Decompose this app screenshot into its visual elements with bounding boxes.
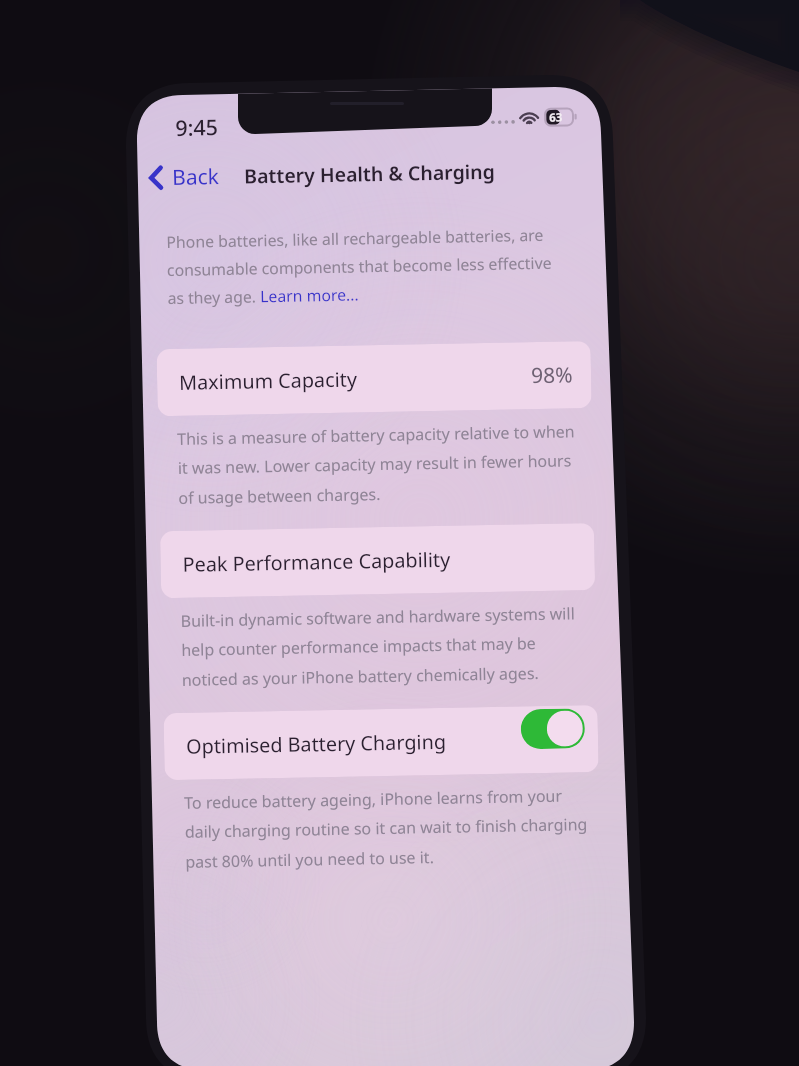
staticText: Back [172, 162, 219, 192]
button[interactable]: Optimised Battery Charging toggle [520, 708, 585, 749]
staticText: This is a measure of battery capacity re… [177, 420, 587, 509]
staticText: To reduce battery ageing, iPhone learns … [184, 784, 594, 873]
staticText: 63 [549, 109, 563, 126]
staticText: Battery Health & Charging [244, 158, 495, 190]
staticText: Peak Performance Capability [182, 546, 451, 578]
staticText: 9:45 [175, 112, 218, 142]
button[interactable]: Back [144, 156, 228, 198]
staticText: Maximum Capacity [179, 365, 357, 396]
staticText: Optimised Battery Charging [186, 728, 446, 760]
staticText: 98% [531, 360, 573, 390]
button[interactable]: Peak Performance Capability [160, 523, 595, 598]
button[interactable]: Optimised Battery Charging [163, 705, 599, 780]
button[interactable]: Maximum Capacity [156, 341, 592, 416]
staticText: Built-in dynamic software and hardware s… [180, 602, 591, 691]
button[interactable]: Phone batteries, like all rechargeable b… [166, 223, 568, 309]
